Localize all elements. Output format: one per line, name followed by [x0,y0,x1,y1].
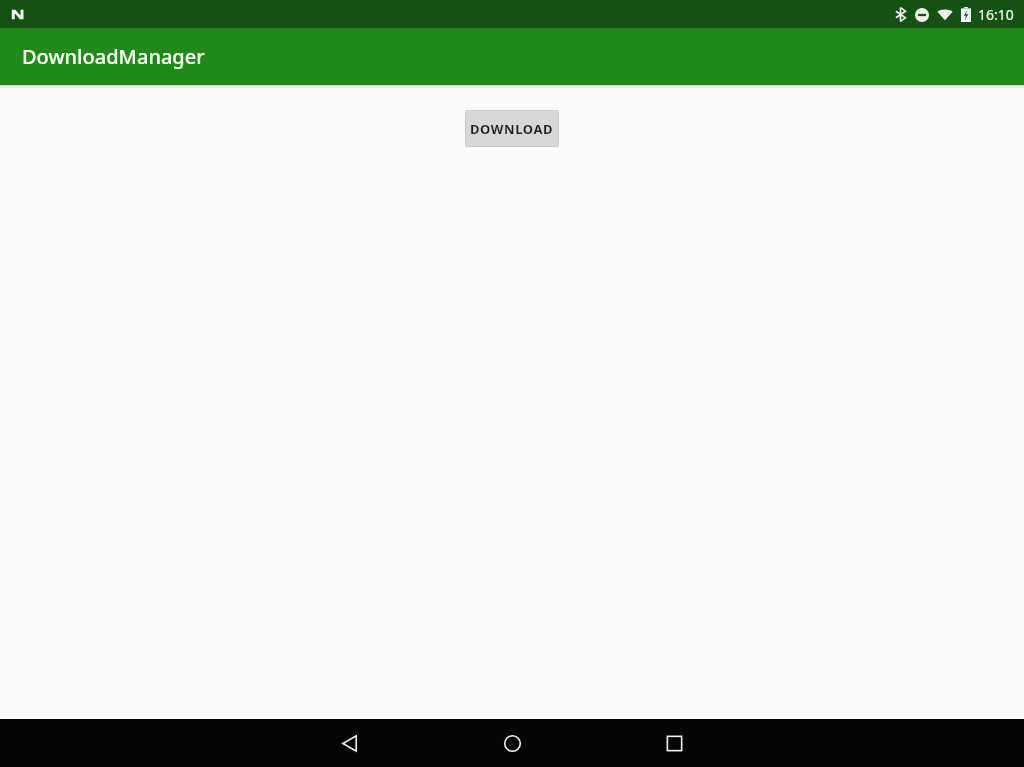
button[interactable]: Recent apps [626,719,722,767]
staticText: DownloadManager [22,43,205,70]
button[interactable]: Home [464,719,560,767]
button[interactable]: Back [302,719,398,767]
button[interactable]: DOWNLOAD [466,111,558,146]
staticText: 16:10 [978,5,1014,24]
staticText: DOWNLOAD [470,120,554,138]
